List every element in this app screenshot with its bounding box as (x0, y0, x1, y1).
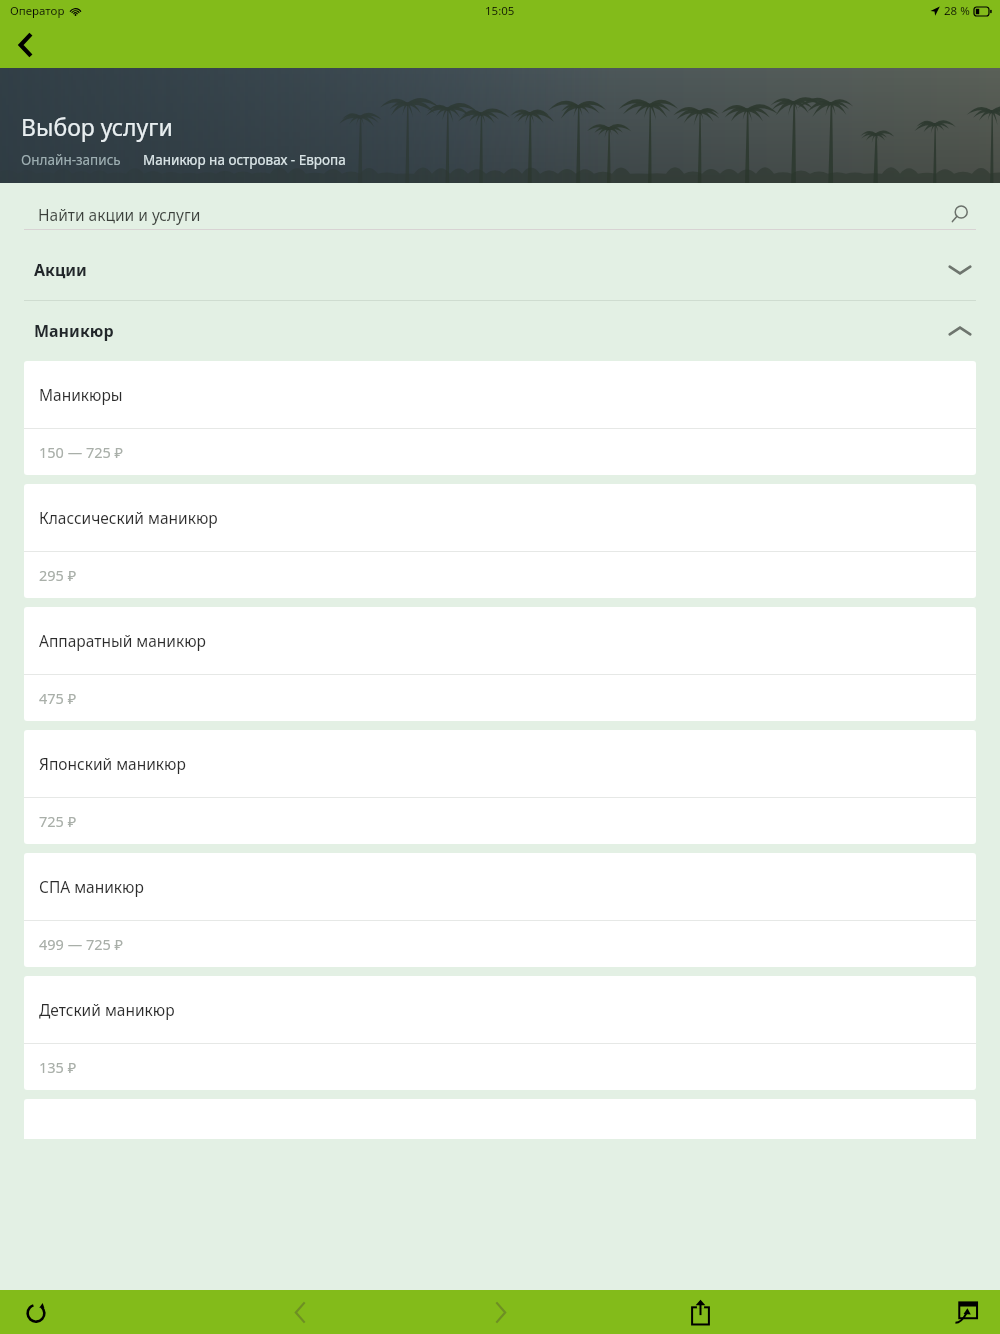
button[interactable]: Reload (0, 1290, 200, 1334)
button[interactable]: Forward (400, 1290, 600, 1334)
staticText: Акции (34, 259, 87, 281)
staticText: Выбор услуги (21, 111, 173, 142)
staticText: 475 ₽ (39, 688, 77, 708)
button[interactable]: Back (200, 1290, 400, 1334)
button[interactable]: Детский маникюр (24, 976, 976, 1090)
button[interactable]: Маникюры (24, 361, 976, 475)
button[interactable]: Маникюр на островах - Европа (143, 151, 346, 169)
staticText: Маникюры (39, 384, 123, 405)
staticText: Маникюр (34, 320, 114, 342)
staticText: Оператор (10, 3, 65, 19)
staticText: Японский маникюр (39, 753, 186, 774)
staticText: 150 — 725 ₽ (39, 442, 124, 462)
button[interactable]: Акции (24, 250, 976, 290)
staticText: СПА маникюр (39, 876, 144, 897)
button[interactable]: Классический маникюр (24, 484, 976, 598)
staticText: Аппаратный маникюр (39, 630, 207, 651)
button[interactable]: Аппаратный маникюр (24, 607, 976, 721)
staticText: Найти акции и услуги (38, 204, 201, 225)
staticText: 725 ₽ (39, 811, 77, 831)
other: Search (950, 204, 970, 224)
staticText: 499 — 725 ₽ (39, 934, 124, 954)
button[interactable]: Найти акции и услуги (24, 199, 976, 230)
staticText: 295 ₽ (39, 565, 77, 585)
button[interactable]: Маникюр (24, 311, 976, 351)
button[interactable]: Share (600, 1290, 800, 1334)
staticText: 28 % (944, 3, 970, 19)
button[interactable]: Онлайн-запись (21, 151, 121, 169)
staticText: 15:05 (485, 3, 515, 19)
staticText: Онлайн-запись (21, 151, 121, 169)
button[interactable]: Японский маникюр (24, 730, 976, 844)
button[interactable]: Back (0, 22, 52, 68)
staticText: 135 ₽ (39, 1057, 77, 1077)
button[interactable]: СПА маникюр (24, 853, 976, 967)
other: Collapse (948, 324, 972, 338)
staticText: Детский маникюр (39, 999, 175, 1020)
staticText: Маникюр на островах - Европа (143, 151, 346, 169)
button[interactable]: Tabs (800, 1290, 1000, 1334)
staticText: Классический маникюр (39, 507, 218, 528)
other: Expand (948, 263, 972, 277)
